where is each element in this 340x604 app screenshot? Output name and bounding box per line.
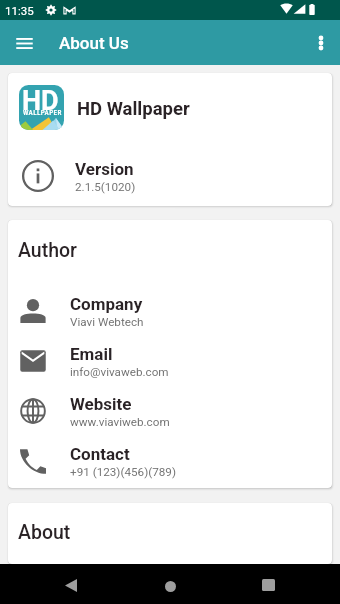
staticText: WALLPAPER: [23, 108, 62, 116]
staticText: +91 (123)(456)(789): [70, 465, 176, 479]
staticText: www.viaviweb.com: [70, 415, 170, 429]
button[interactable]: Back: [53, 567, 89, 603]
staticText: info@vivaweb.com: [70, 365, 169, 379]
button[interactable]: Version: [8, 141, 332, 206]
staticText: Author: [18, 239, 77, 262]
staticText: About Us: [59, 33, 129, 53]
button[interactable]: Email: [8, 336, 332, 386]
staticText: 2.1.5(1020): [75, 180, 136, 194]
staticText: Version: [75, 159, 134, 179]
staticText: HD: [22, 85, 59, 117]
button[interactable]: Home: [152, 568, 188, 604]
staticText: Contact: [70, 444, 130, 464]
staticText: Viavi Webtech: [70, 315, 144, 329]
button[interactable]: Contact: [8, 436, 332, 486]
button[interactable]: Recent apps: [250, 567, 286, 603]
button[interactable]: Company: [8, 286, 332, 336]
button[interactable]: HD: [8, 73, 332, 141]
button[interactable]: Website: [8, 386, 332, 436]
button[interactable]: More options: [303, 25, 339, 61]
staticText: 11:35: [5, 4, 34, 17]
staticText: About: [18, 521, 71, 544]
staticText: Website: [70, 394, 132, 414]
staticText: HD Wallpaper: [77, 98, 190, 120]
staticText: Company: [70, 294, 143, 314]
button[interactable]: Navigation menu: [6, 25, 42, 61]
staticText: Email: [70, 344, 113, 364]
